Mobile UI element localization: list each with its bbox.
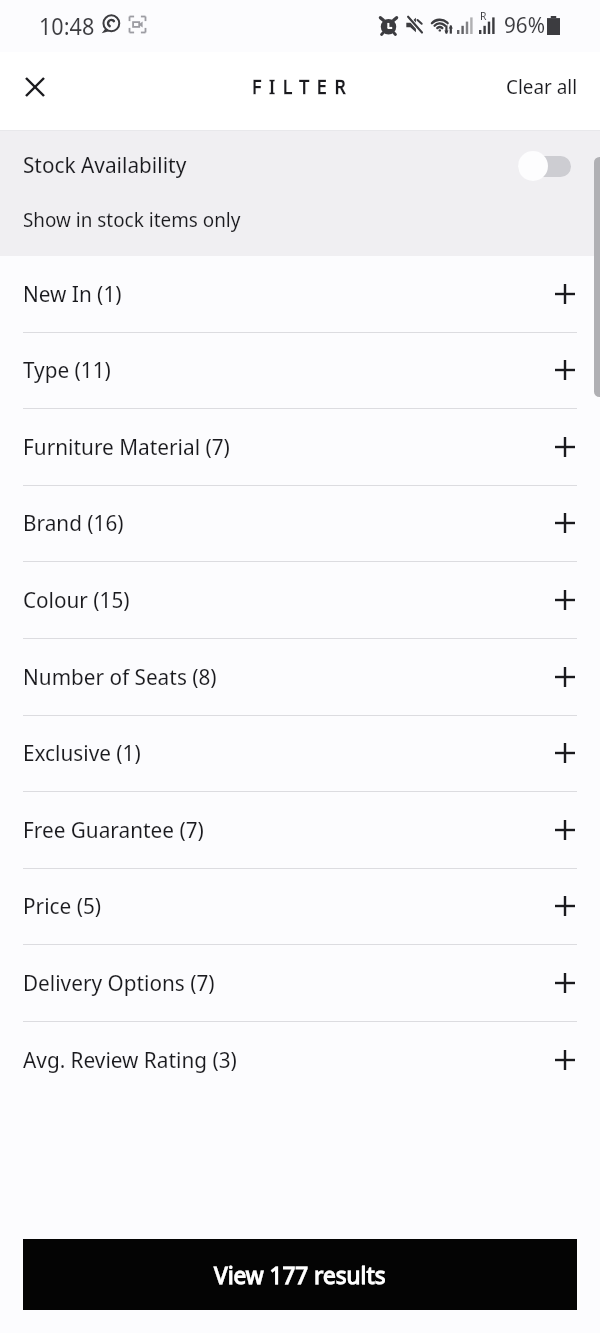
button[interactable]: Free Guarantee (7) (0, 792, 600, 869)
button[interactable]: View 177 results (23, 1239, 577, 1310)
staticText: FILTER (252, 74, 354, 100)
staticText: Free Guarantee (7) (23, 814, 204, 844)
staticText: Delivery Options (7) (23, 967, 215, 997)
staticText: 96% (504, 9, 545, 39)
button[interactable]: New In (1) (0, 256, 600, 333)
staticText: Price (5) (23, 890, 101, 920)
staticText: Furniture Material (7) (23, 431, 230, 461)
button[interactable]: Number of Seats (8) (0, 639, 600, 716)
button[interactable]: Brand (16) (0, 486, 600, 562)
staticText: 10:48 (39, 10, 95, 41)
staticText: Clear all (506, 73, 578, 100)
staticText: Show in stock items only (23, 206, 241, 233)
staticText: Avg. Review Rating (3) (23, 1044, 237, 1074)
staticText: Exclusive (1) (23, 737, 141, 767)
button[interactable]: Avg. Review Rating (3) (0, 1022, 600, 1099)
button[interactable]: Close (14, 66, 56, 108)
staticText: View 177 results (214, 1258, 386, 1291)
staticText: R (480, 8, 487, 23)
button[interactable]: Colour (15) (0, 562, 600, 639)
staticText: New In (1) (23, 278, 122, 308)
button[interactable]: Type (11) (0, 333, 600, 409)
staticText: Number of Seats (8) (23, 661, 217, 691)
button[interactable]: Price (5) (0, 869, 600, 945)
staticText: Brand (16) (23, 507, 124, 537)
staticText: Type (11) (23, 354, 111, 384)
button[interactable]: Exclusive (1) (0, 716, 600, 792)
button[interactable]: Clear all (488, 61, 600, 112)
button[interactable]: Delivery Options (7) (0, 945, 600, 1022)
staticText: Stock Availability (23, 149, 187, 179)
staticText: Colour (15) (23, 584, 130, 614)
button[interactable]: Show in stock items only toggle (518, 150, 572, 182)
button[interactable]: Furniture Material (7) (0, 409, 600, 486)
